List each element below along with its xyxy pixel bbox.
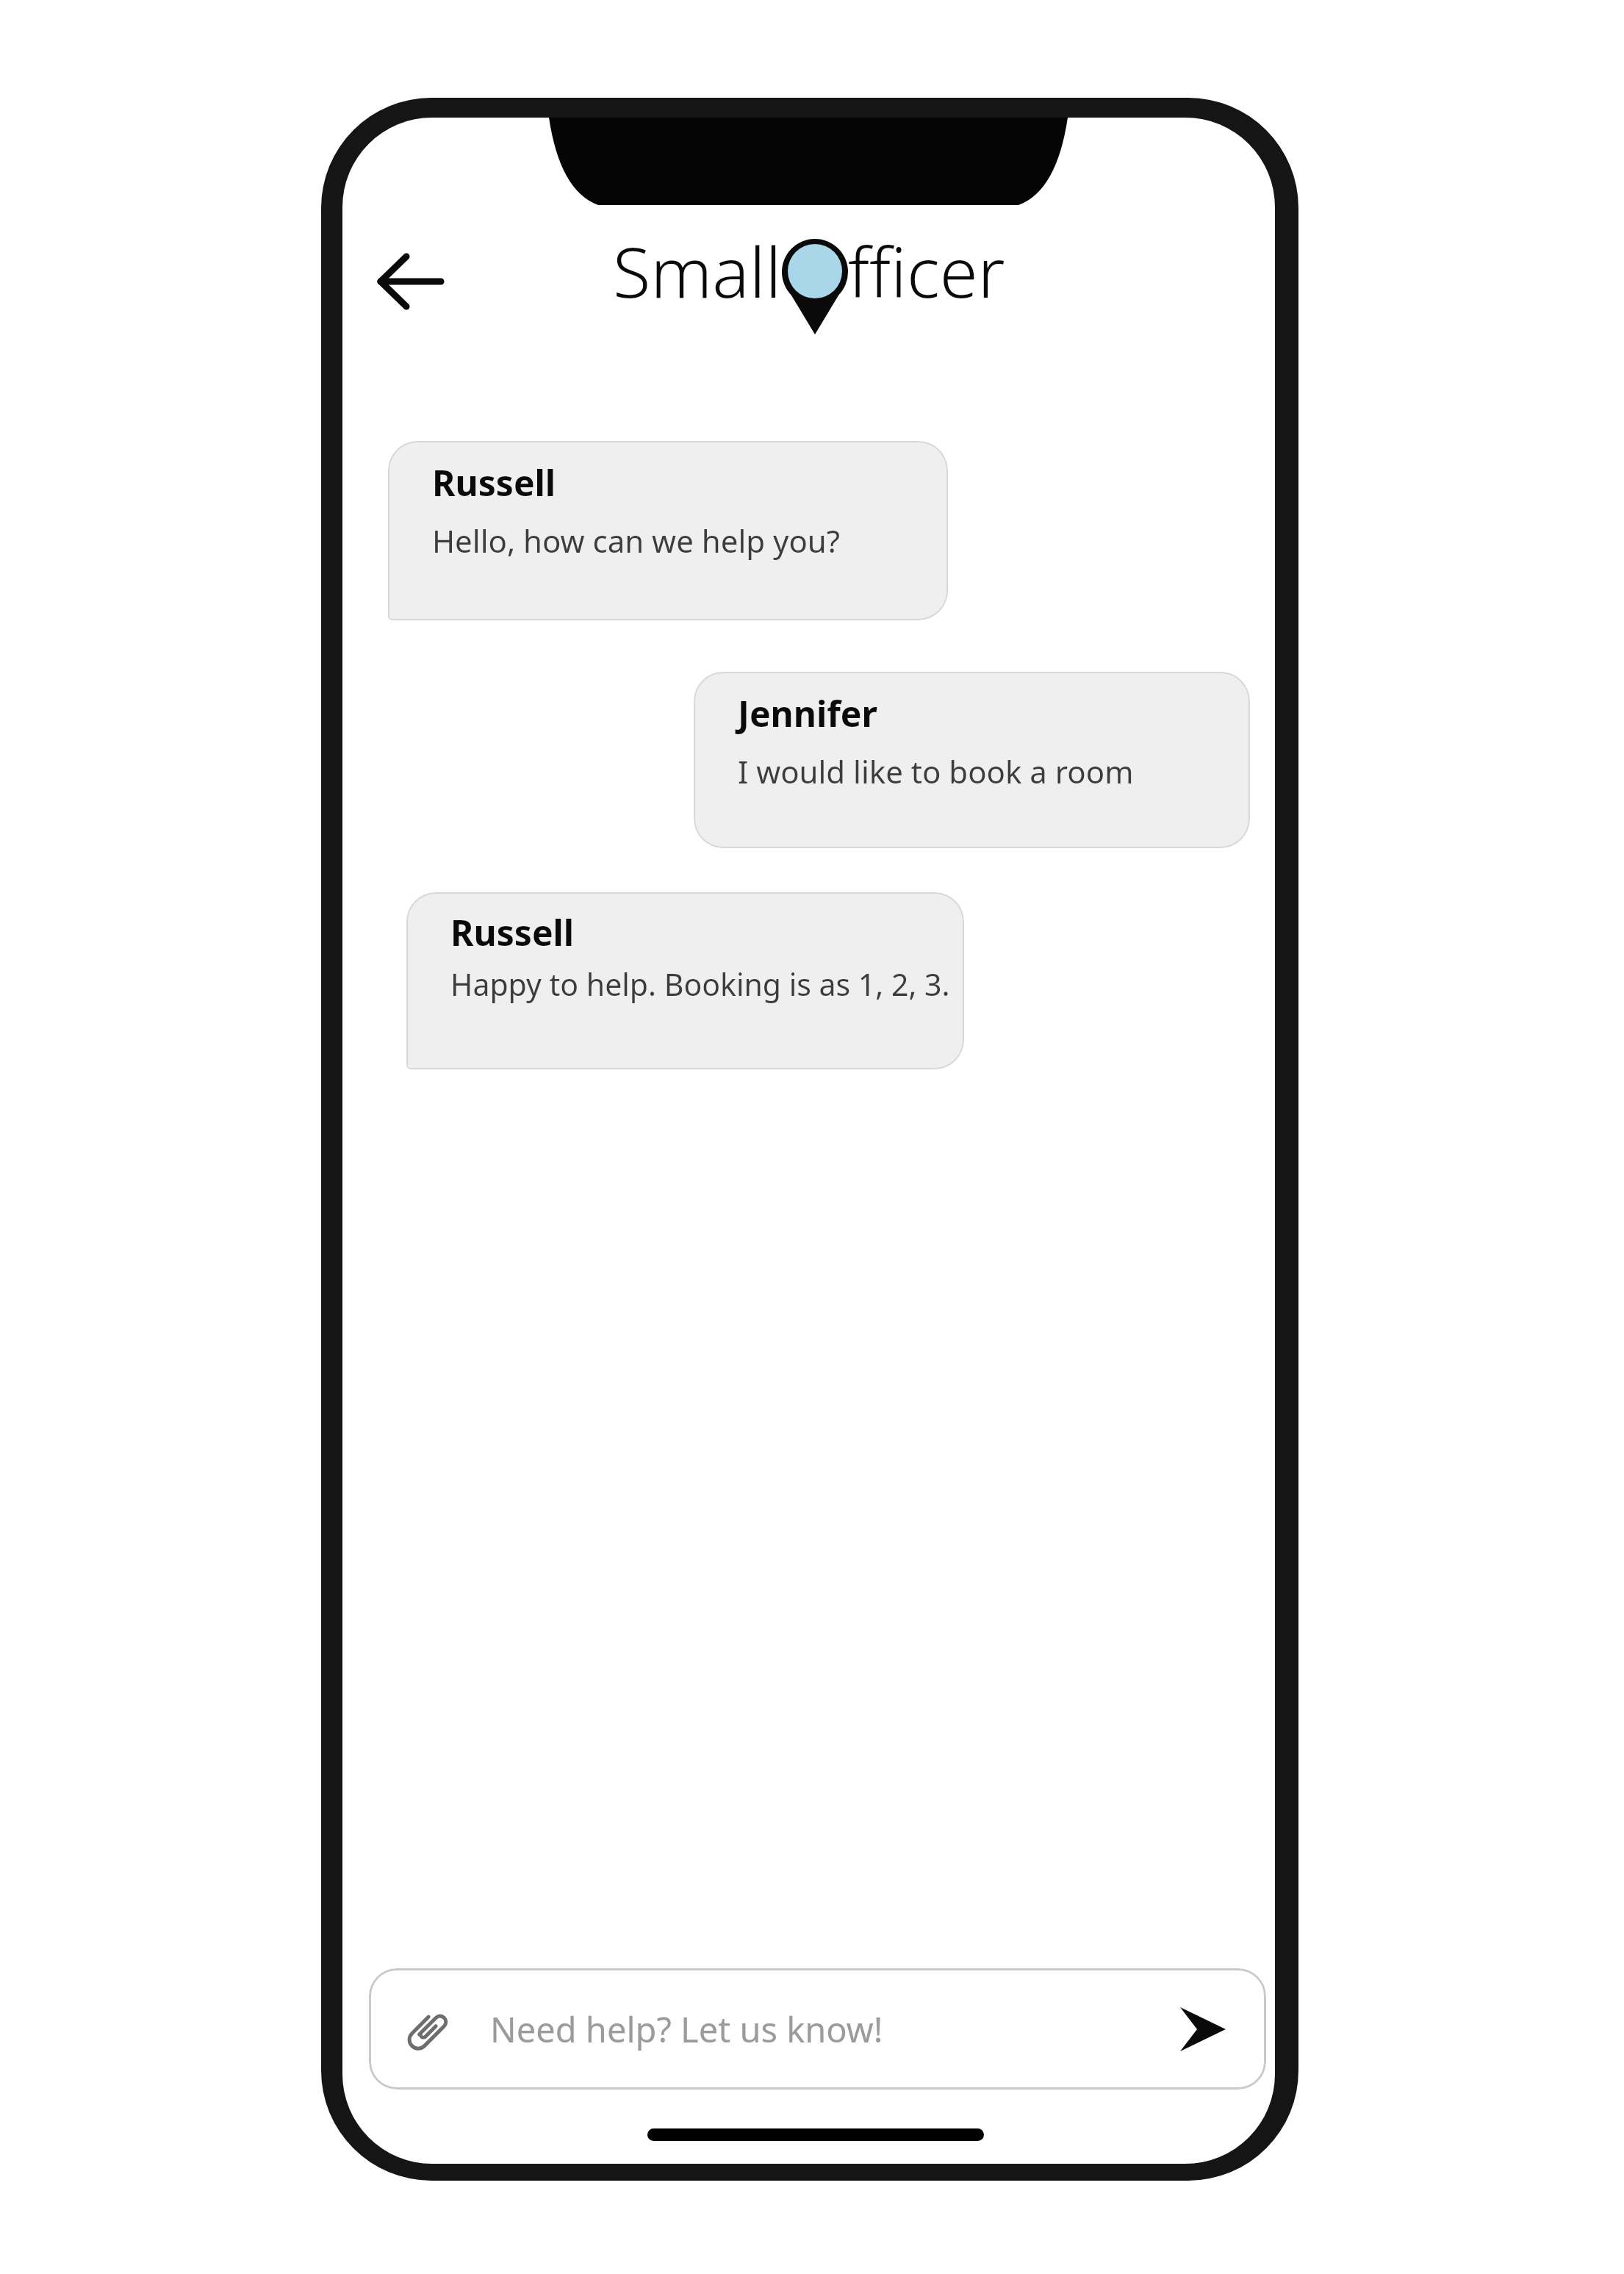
- staticText: Russell: [450, 908, 575, 956]
- staticText: Small: [613, 224, 782, 318]
- button[interactable]: Russell: [406, 892, 964, 1069]
- button[interactable]: [366, 245, 454, 318]
- staticText: I would like to book a room: [738, 750, 1134, 792]
- staticText: Happy to help. Booking is as 1, 2, 3.: [450, 964, 950, 1005]
- staticText: fficer: [848, 224, 1005, 318]
- staticText: Hello, how can we help you?: [432, 520, 840, 562]
- button[interactable]: Russell: [388, 441, 948, 620]
- staticText: Russell: [432, 459, 556, 506]
- staticText: Jennifer: [738, 689, 877, 737]
- staticText: Need help? Let us know!: [490, 2006, 883, 2053]
- button[interactable]: Need help? Let us know!: [369, 1968, 1266, 2090]
- button[interactable]: Jennifer: [694, 672, 1250, 848]
